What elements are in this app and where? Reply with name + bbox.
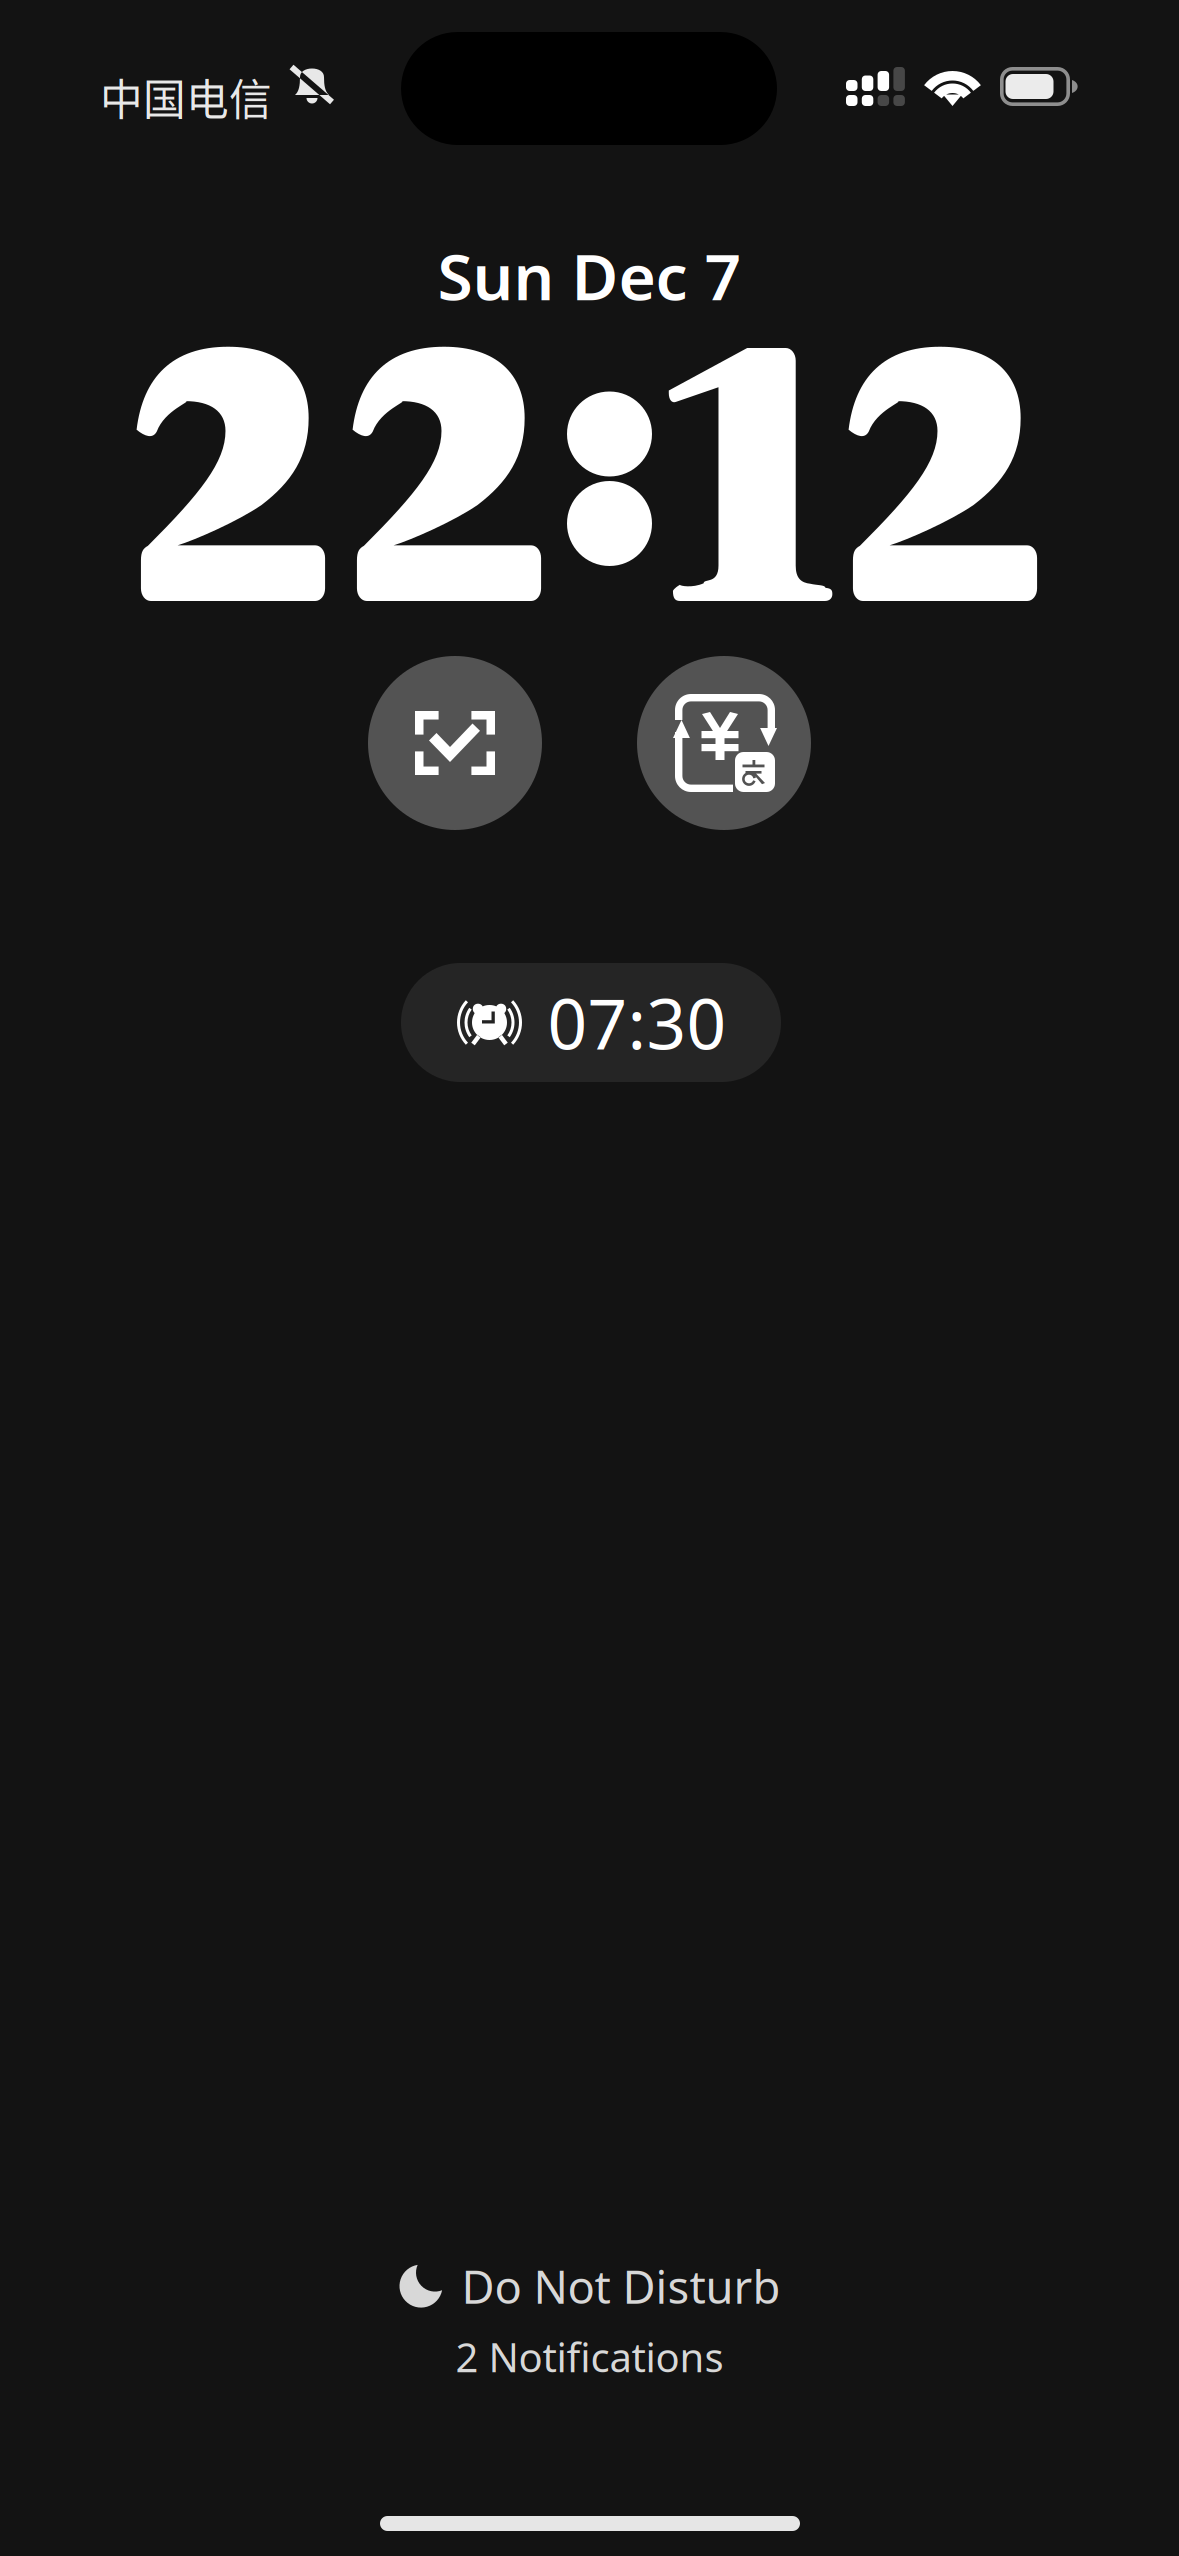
- staticText: 中国电信: [100, 66, 272, 128]
- staticText: 07:30: [547, 976, 726, 1069]
- button[interactable]: Alipay payment: [637, 656, 811, 830]
- staticText: 2 Notifications: [455, 2330, 723, 2383]
- button[interactable]: Scan code: [368, 656, 542, 830]
- staticText: Sun Dec 7: [437, 233, 741, 318]
- staticText: Do Not Disturb: [461, 2256, 780, 2316]
- button[interactable]: 07:30: [401, 963, 781, 1082]
